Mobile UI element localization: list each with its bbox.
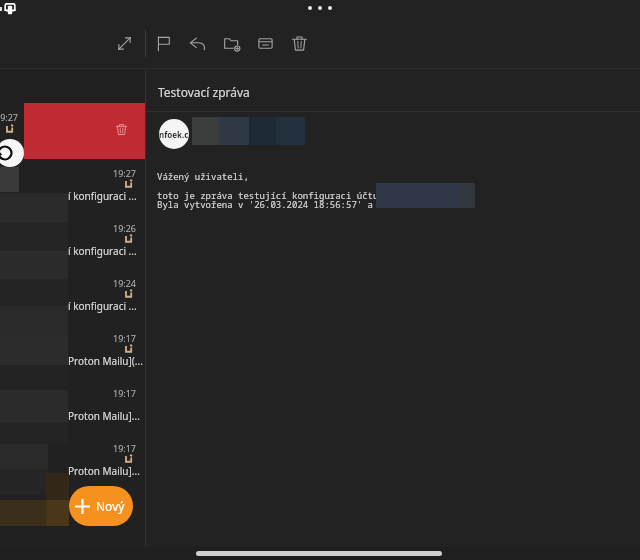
staticText: í konfiguraci ...	[68, 189, 137, 203]
button[interactable]: 19:27	[0, 159, 145, 214]
button[interactable]: Home	[196, 551, 442, 556]
button[interactable]: Move to folder	[214, 26, 248, 60]
staticText: 19:26	[113, 222, 137, 234]
staticText: 19:17	[113, 332, 137, 344]
button[interactable]: Delete conversation	[24, 103, 145, 159]
staticText: Proton Mailu]...	[68, 464, 140, 478]
button[interactable]: Expand	[107, 26, 141, 60]
staticText: 19:24	[113, 277, 137, 289]
button[interactable]: Nový	[69, 486, 133, 526]
button[interactable]: Testovací zpráva	[158, 84, 250, 100]
button[interactable]: Delete	[282, 26, 316, 60]
button[interactable]: 19:17	[0, 434, 145, 489]
button[interactable]: Flag	[146, 26, 180, 60]
staticText: í konfiguraci ...	[68, 299, 137, 313]
staticText: 19:27	[113, 167, 137, 179]
button[interactable]: 19:24	[0, 269, 145, 324]
staticText: 19:27	[0, 111, 19, 123]
staticText: Byla vytvořena v '26.03.2024 18:56:57' a…	[157, 198, 384, 210]
button[interactable]: 19:26	[0, 214, 145, 269]
staticText: Vážený uživateli,	[157, 170, 249, 182]
staticText: Proton Mailu](...	[68, 354, 143, 368]
staticText: 19:17	[113, 387, 137, 399]
staticText: Nový	[96, 498, 125, 514]
button[interactable]: 19:17	[0, 379, 145, 434]
button[interactable]: Undo	[0, 139, 24, 167]
button[interactable]: Reply	[180, 26, 214, 60]
staticText: nfoek.cz	[159, 129, 189, 140]
staticText: Proton Mailu]...	[68, 409, 140, 423]
button[interactable]: 19:17	[0, 324, 145, 379]
button[interactable]: Archive	[248, 26, 282, 60]
staticText: 19:17	[113, 442, 137, 454]
staticText: toto je zpráva testující konfiguraci účt…	[157, 189, 379, 201]
staticText: í konfiguraci ...	[68, 244, 137, 258]
button[interactable]: Sender avatar	[159, 119, 189, 149]
